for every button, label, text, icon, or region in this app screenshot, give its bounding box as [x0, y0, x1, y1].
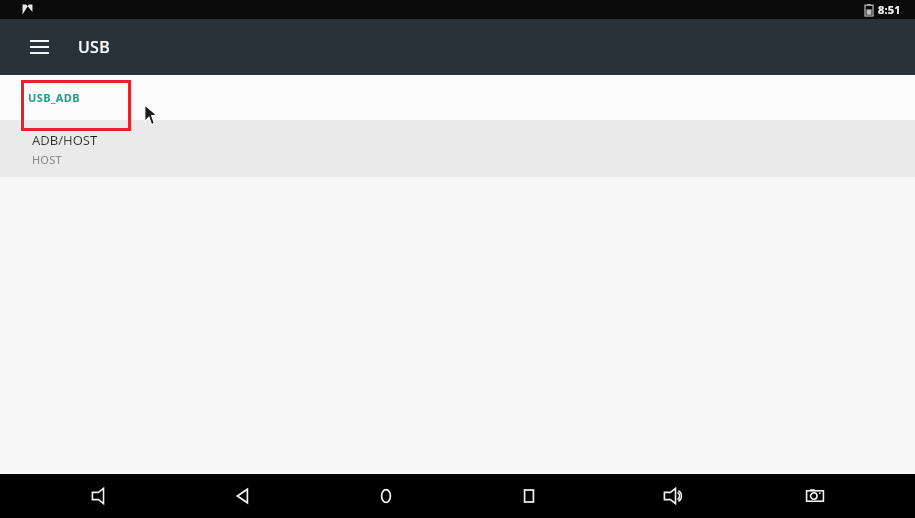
staticText: HOST: [32, 152, 62, 167]
button[interactable]: Screenshot: [793, 474, 837, 518]
staticText: ADB/HOST: [32, 131, 98, 149]
button[interactable]: Volume up: [650, 474, 694, 518]
staticText: USB: [78, 36, 110, 58]
button[interactable]: ADB/HOST: [0, 120, 915, 177]
button[interactable]: Volume down: [78, 474, 122, 518]
button[interactable]: Home: [364, 474, 408, 518]
button[interactable]: Recent apps: [507, 474, 551, 518]
button[interactable]: Open navigation menu: [22, 30, 56, 64]
button[interactable]: Back: [221, 474, 265, 518]
staticText: USB_ADB: [28, 90, 80, 105]
staticText: 8:51: [878, 2, 901, 17]
